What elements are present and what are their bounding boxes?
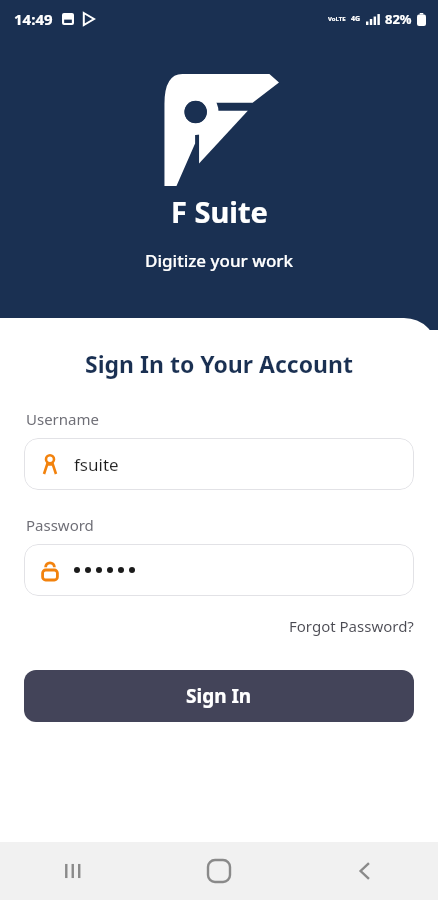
staticText: Sign In [186, 683, 252, 709]
staticText: Password [26, 515, 94, 535]
button[interactable]: Home [146, 842, 292, 900]
staticText: VoLTE [328, 15, 346, 23]
button[interactable]: Sign In [24, 670, 414, 722]
staticText: Digitize your work [145, 249, 293, 272]
staticText: Username [26, 409, 99, 429]
staticText: 82% [385, 10, 412, 28]
button[interactable]: Back [292, 842, 438, 900]
button[interactable]: Forgot Password? [289, 612, 438, 640]
staticText: 4G [351, 14, 361, 24]
staticText: F Suite [171, 192, 268, 231]
staticText: Sign In to Your Account [0, 348, 438, 379]
button[interactable] [24, 544, 414, 596]
staticText: 14:49 [14, 9, 53, 29]
button[interactable]: Recent apps [0, 842, 146, 900]
staticText: fsuite [74, 453, 119, 476]
button[interactable]: fsuite [24, 438, 414, 490]
